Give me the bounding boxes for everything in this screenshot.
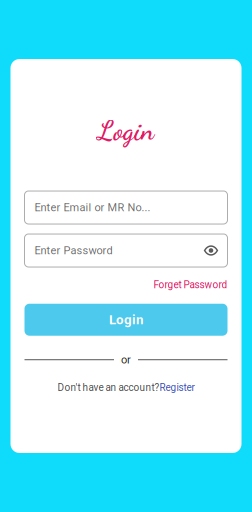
staticText: Forget Password — [153, 279, 227, 291]
staticText: Don't have an account? — [57, 382, 159, 393]
staticText: Login — [97, 115, 154, 147]
staticText: Register — [159, 382, 194, 393]
staticText: Login — [109, 312, 143, 327]
button[interactable]: Don't have an account? — [57, 382, 194, 393]
button[interactable]: Login — [24, 304, 227, 336]
button[interactable]: Forget Password — [153, 276, 227, 294]
staticText: or — [121, 353, 131, 366]
staticText: Enter Email or MR No... — [34, 201, 150, 214]
staticText: Enter Password — [34, 244, 112, 257]
